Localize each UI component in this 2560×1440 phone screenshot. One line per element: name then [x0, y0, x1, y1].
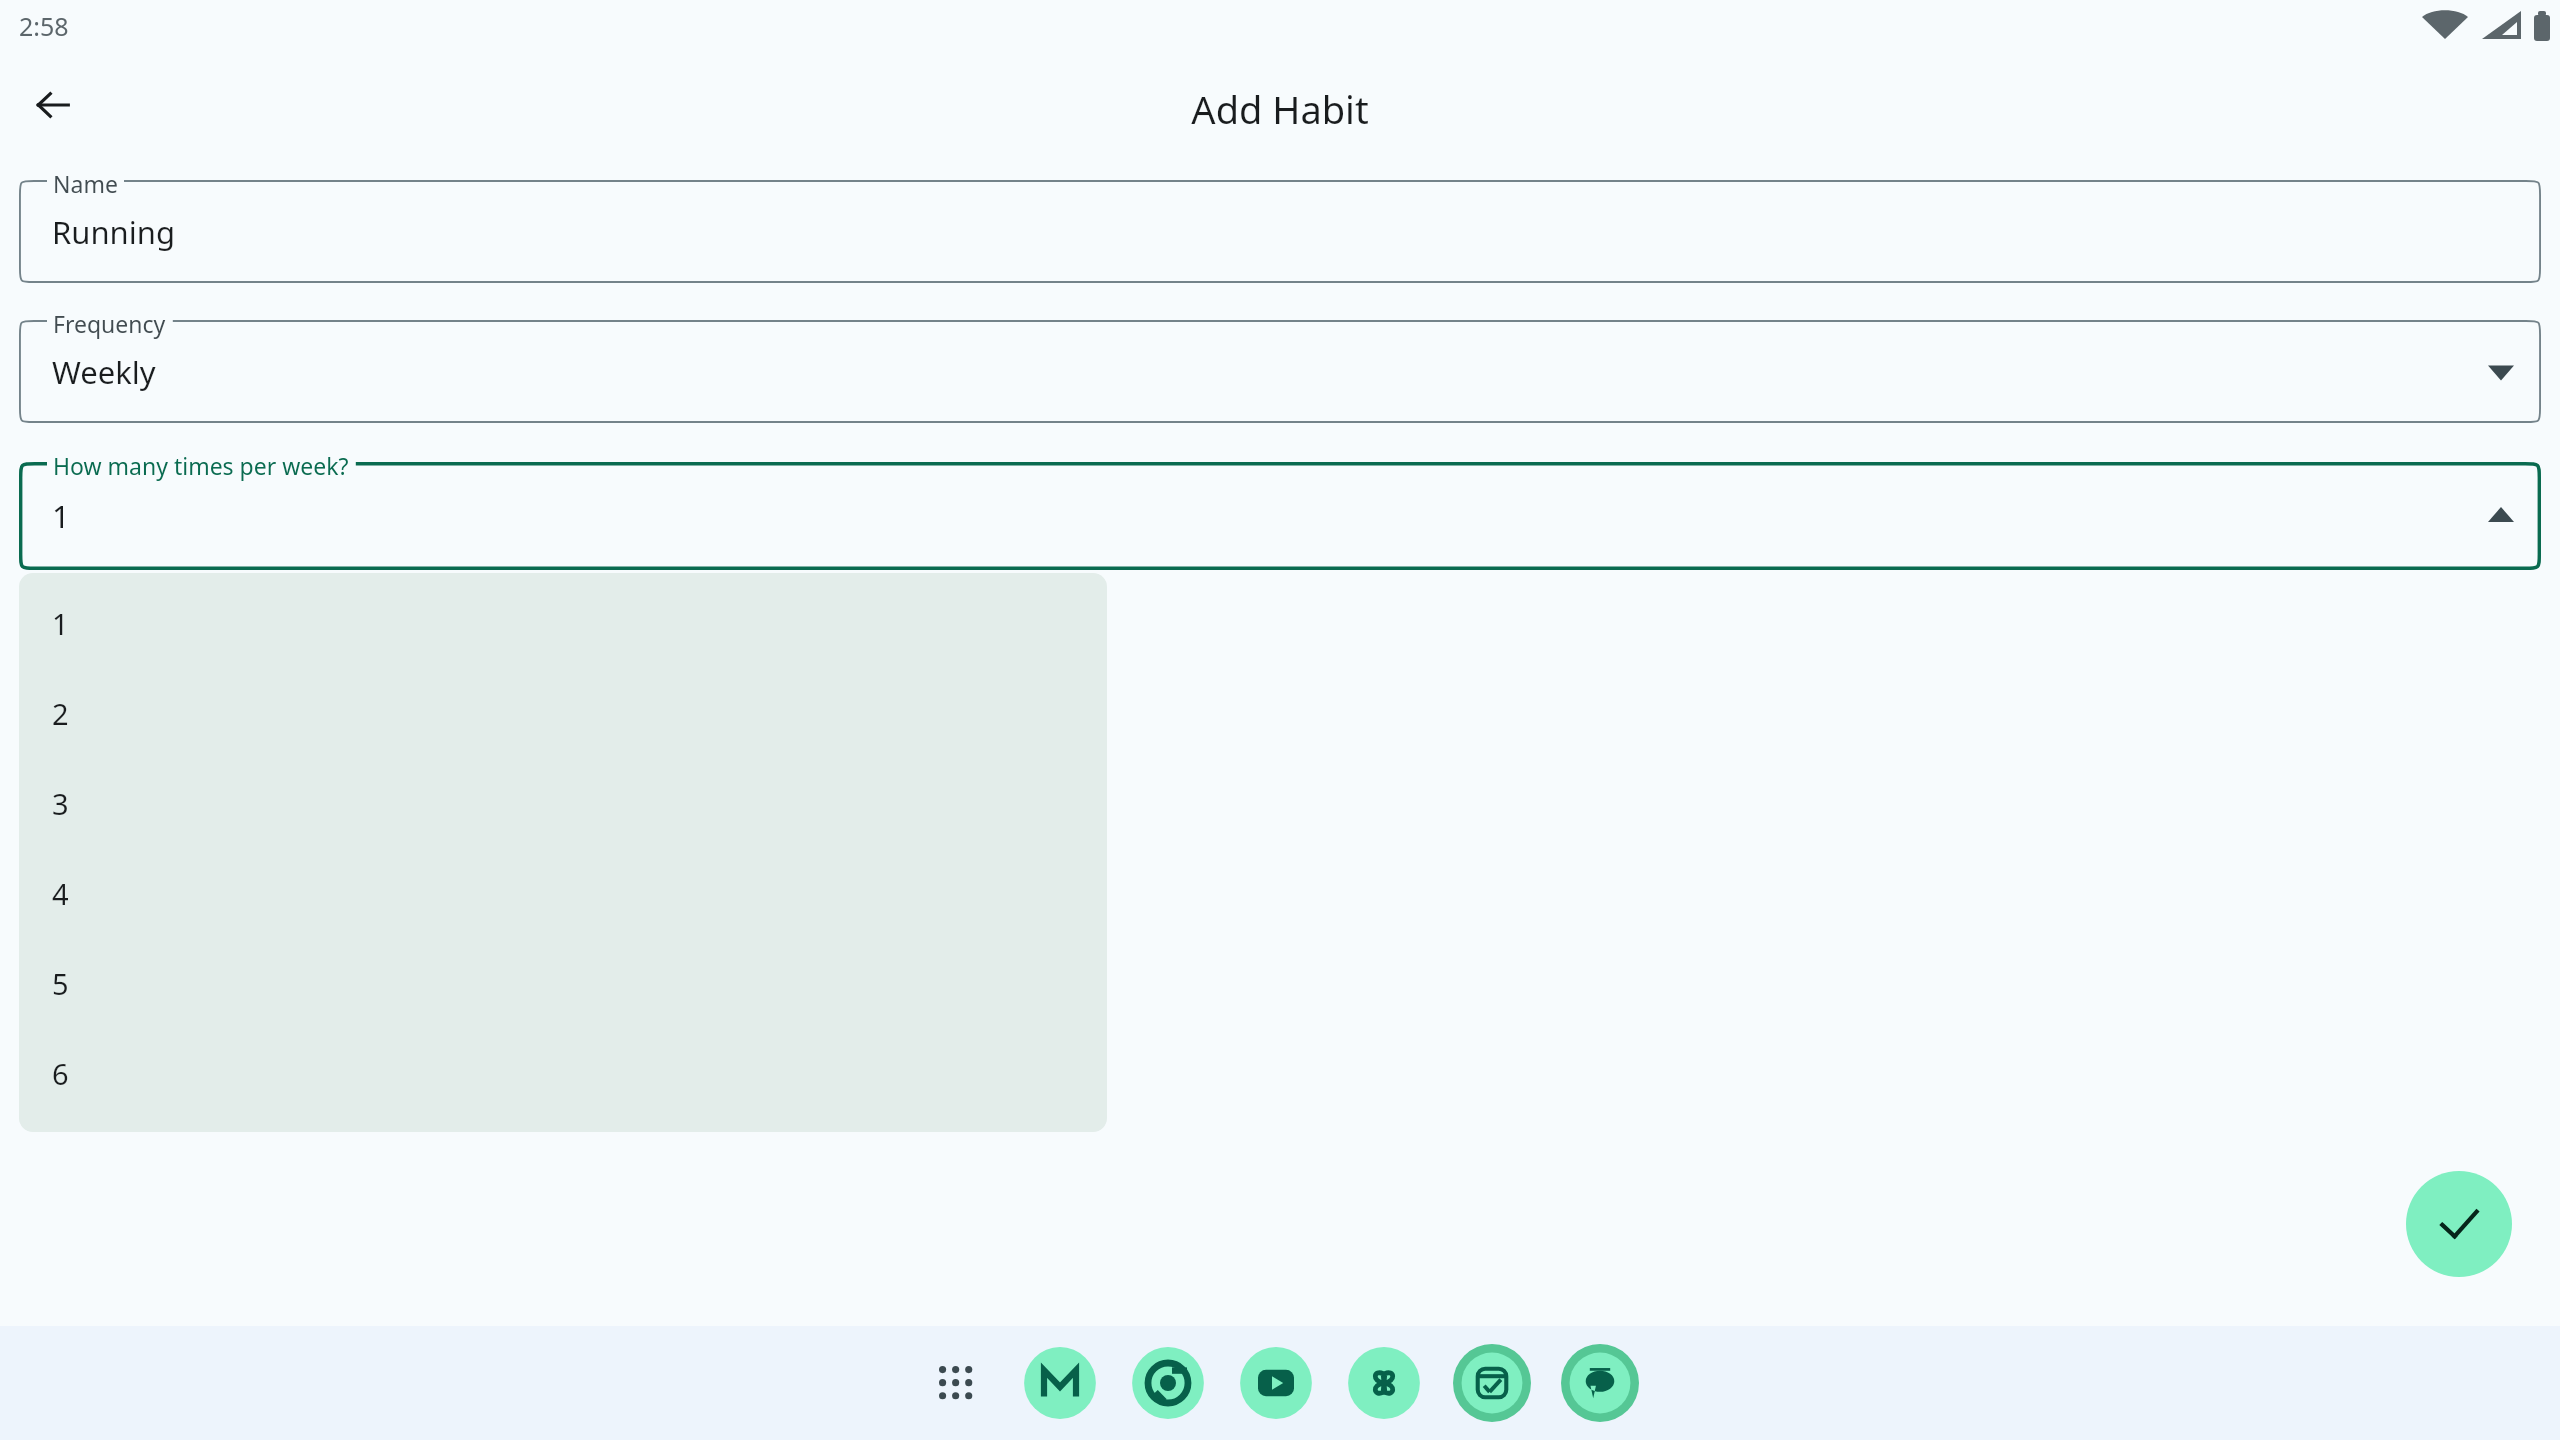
- button[interactable]: Messages: [1557, 1340, 1643, 1426]
- button[interactable]: All apps: [917, 1344, 995, 1422]
- button[interactable]: 4: [19, 848, 1107, 938]
- button[interactable]: Chrome: [1125, 1340, 1211, 1426]
- staticText: 2: [52, 694, 69, 733]
- button[interactable]: Habits: [1449, 1340, 1535, 1426]
- staticText: 5: [52, 964, 69, 1003]
- staticText: 3: [52, 784, 69, 823]
- button[interactable]: 1: [19, 578, 1107, 668]
- staticText: Add Habit: [1191, 83, 1369, 135]
- staticText: 6: [52, 1054, 69, 1093]
- staticText: Name: [53, 168, 118, 199]
- staticText: 2:58: [19, 9, 69, 43]
- button[interactable]: Frequency: [19, 320, 2541, 423]
- button[interactable]: Photos: [1341, 1340, 1427, 1426]
- button[interactable]: 3: [19, 758, 1107, 848]
- staticText: 1: [52, 495, 70, 537]
- button[interactable]: 2: [19, 668, 1107, 758]
- button[interactable]: Back: [19, 71, 87, 139]
- staticText: 4: [52, 874, 69, 913]
- button[interactable]: How many times per week?: [19, 462, 2541, 570]
- button[interactable]: Gmail: [1017, 1340, 1103, 1426]
- button[interactable]: 6: [19, 1028, 1107, 1118]
- button[interactable]: YouTube: [1233, 1340, 1319, 1426]
- button[interactable]: Name: [19, 180, 2541, 283]
- staticText: Frequency: [53, 308, 166, 339]
- staticText: How many times per week?: [53, 450, 349, 481]
- button[interactable]: 5: [19, 938, 1107, 1028]
- staticText: 1: [52, 604, 69, 643]
- staticText: Running: [52, 211, 175, 253]
- staticText: Weekly: [52, 351, 156, 393]
- button[interactable]: Save habit: [2406, 1171, 2512, 1277]
